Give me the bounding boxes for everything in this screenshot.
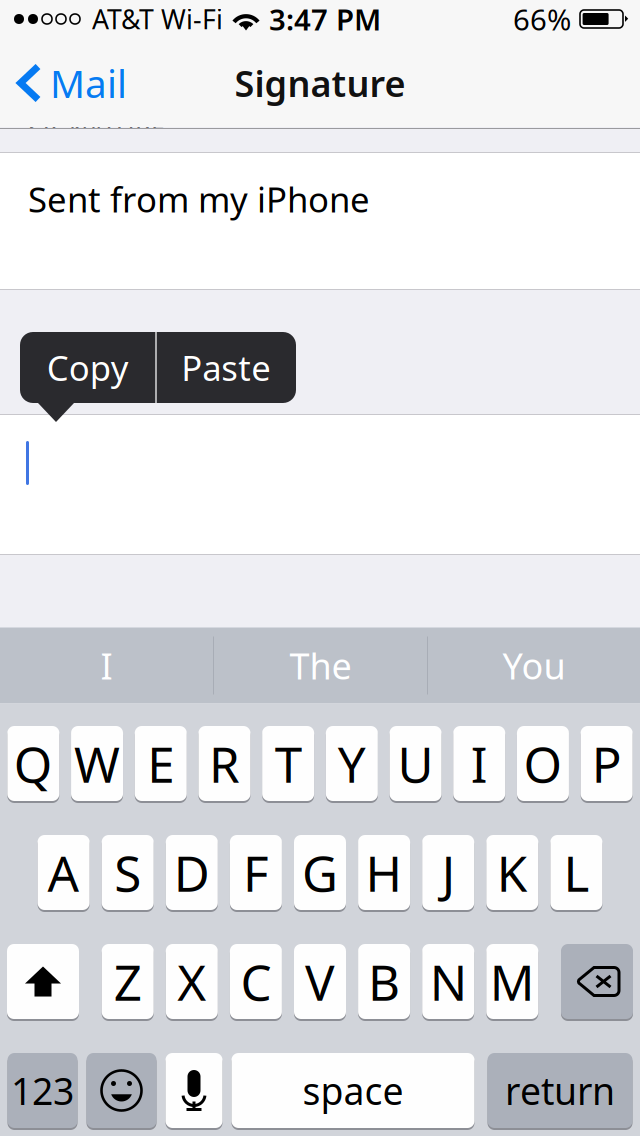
- button[interactable]: space: [231, 1052, 474, 1129]
- button[interactable]: Mail: [0, 43, 141, 123]
- button[interactable]: W: [71, 725, 123, 802]
- button[interactable]: T: [262, 725, 314, 802]
- staticText: Z: [114, 949, 142, 1014]
- staticText: 123: [11, 1066, 74, 1115]
- staticText: K: [497, 840, 528, 905]
- button[interactable]: 123: [7, 1052, 77, 1129]
- button[interactable]: The: [214, 627, 427, 703]
- staticText: Signature: [234, 59, 405, 107]
- staticText: I: [100, 642, 112, 689]
- staticText: Q: [14, 731, 53, 796]
- button[interactable]: I: [0, 627, 213, 703]
- button[interactable]: Y: [326, 725, 378, 802]
- button[interactable]: B: [358, 943, 410, 1020]
- button[interactable]: V: [294, 943, 346, 1020]
- button[interactable]: Z: [102, 943, 154, 1020]
- staticText: L: [563, 840, 589, 905]
- button[interactable]: U: [390, 725, 442, 802]
- button[interactable]: M: [486, 943, 538, 1020]
- staticText: F: [243, 840, 269, 905]
- staticText: You: [502, 642, 565, 689]
- staticText: Y: [338, 731, 366, 796]
- button[interactable]: K: [486, 834, 538, 911]
- button[interactable]: You: [428, 627, 640, 703]
- button[interactable]: I: [453, 725, 505, 802]
- staticText: 66%: [513, 0, 571, 38]
- staticText: U: [398, 731, 434, 796]
- button[interactable]: Copy: [20, 332, 155, 403]
- button[interactable]: E: [135, 725, 187, 802]
- staticText: R: [209, 731, 240, 796]
- button[interactable]: return: [487, 1052, 632, 1129]
- button[interactable]: C: [230, 943, 282, 1020]
- button[interactable]: L: [550, 834, 602, 911]
- button[interactable]: Q: [7, 725, 59, 802]
- staticText: SIGNATURE: [28, 112, 165, 146]
- button[interactable]: [86, 1052, 156, 1129]
- button[interactable]: Paste: [157, 332, 296, 403]
- button[interactable]: H: [358, 834, 410, 911]
- button[interactable]: X: [166, 943, 218, 1020]
- staticText: S: [114, 840, 141, 905]
- button[interactable]: [561, 943, 633, 1020]
- button[interactable]: F: [230, 834, 282, 911]
- staticText: O: [523, 731, 562, 796]
- staticText: D: [174, 840, 210, 905]
- button[interactable]: S: [102, 834, 154, 911]
- staticText: E: [147, 731, 174, 796]
- staticText: Sent from my iPhone: [28, 176, 370, 222]
- button[interactable]: N: [422, 943, 474, 1020]
- button[interactable]: A: [38, 834, 90, 911]
- staticText: J: [442, 840, 455, 905]
- button[interactable]: J: [422, 834, 474, 911]
- staticText: The: [289, 642, 351, 689]
- staticText: AT&T Wi-Fi: [92, 1, 223, 37]
- button[interactable]: R: [198, 725, 250, 802]
- staticText: V: [305, 949, 335, 1014]
- button[interactable]: [165, 1052, 222, 1129]
- staticText: G: [302, 840, 338, 905]
- staticText: B: [368, 949, 400, 1014]
- staticText: P: [592, 731, 622, 796]
- staticText: N: [430, 949, 467, 1014]
- button[interactable]: O: [517, 725, 569, 802]
- staticText: I: [471, 731, 488, 796]
- staticText: Copy: [47, 344, 129, 390]
- staticText: A: [48, 840, 80, 905]
- button[interactable]: D: [166, 834, 218, 911]
- staticText: H: [366, 840, 403, 905]
- button[interactable]: P: [581, 725, 633, 802]
- button[interactable]: [7, 943, 79, 1020]
- staticText: 3:47 PM: [269, 0, 381, 38]
- staticText: space: [302, 1066, 403, 1115]
- staticText: X: [177, 949, 206, 1014]
- staticText: T: [275, 731, 302, 796]
- button[interactable]: G: [294, 834, 346, 911]
- staticText: Paste: [181, 344, 271, 390]
- staticText: W: [74, 731, 120, 796]
- staticText: M: [490, 949, 535, 1014]
- staticText: Mail: [50, 57, 127, 109]
- staticText: return: [505, 1066, 615, 1115]
- staticText: C: [240, 949, 271, 1014]
